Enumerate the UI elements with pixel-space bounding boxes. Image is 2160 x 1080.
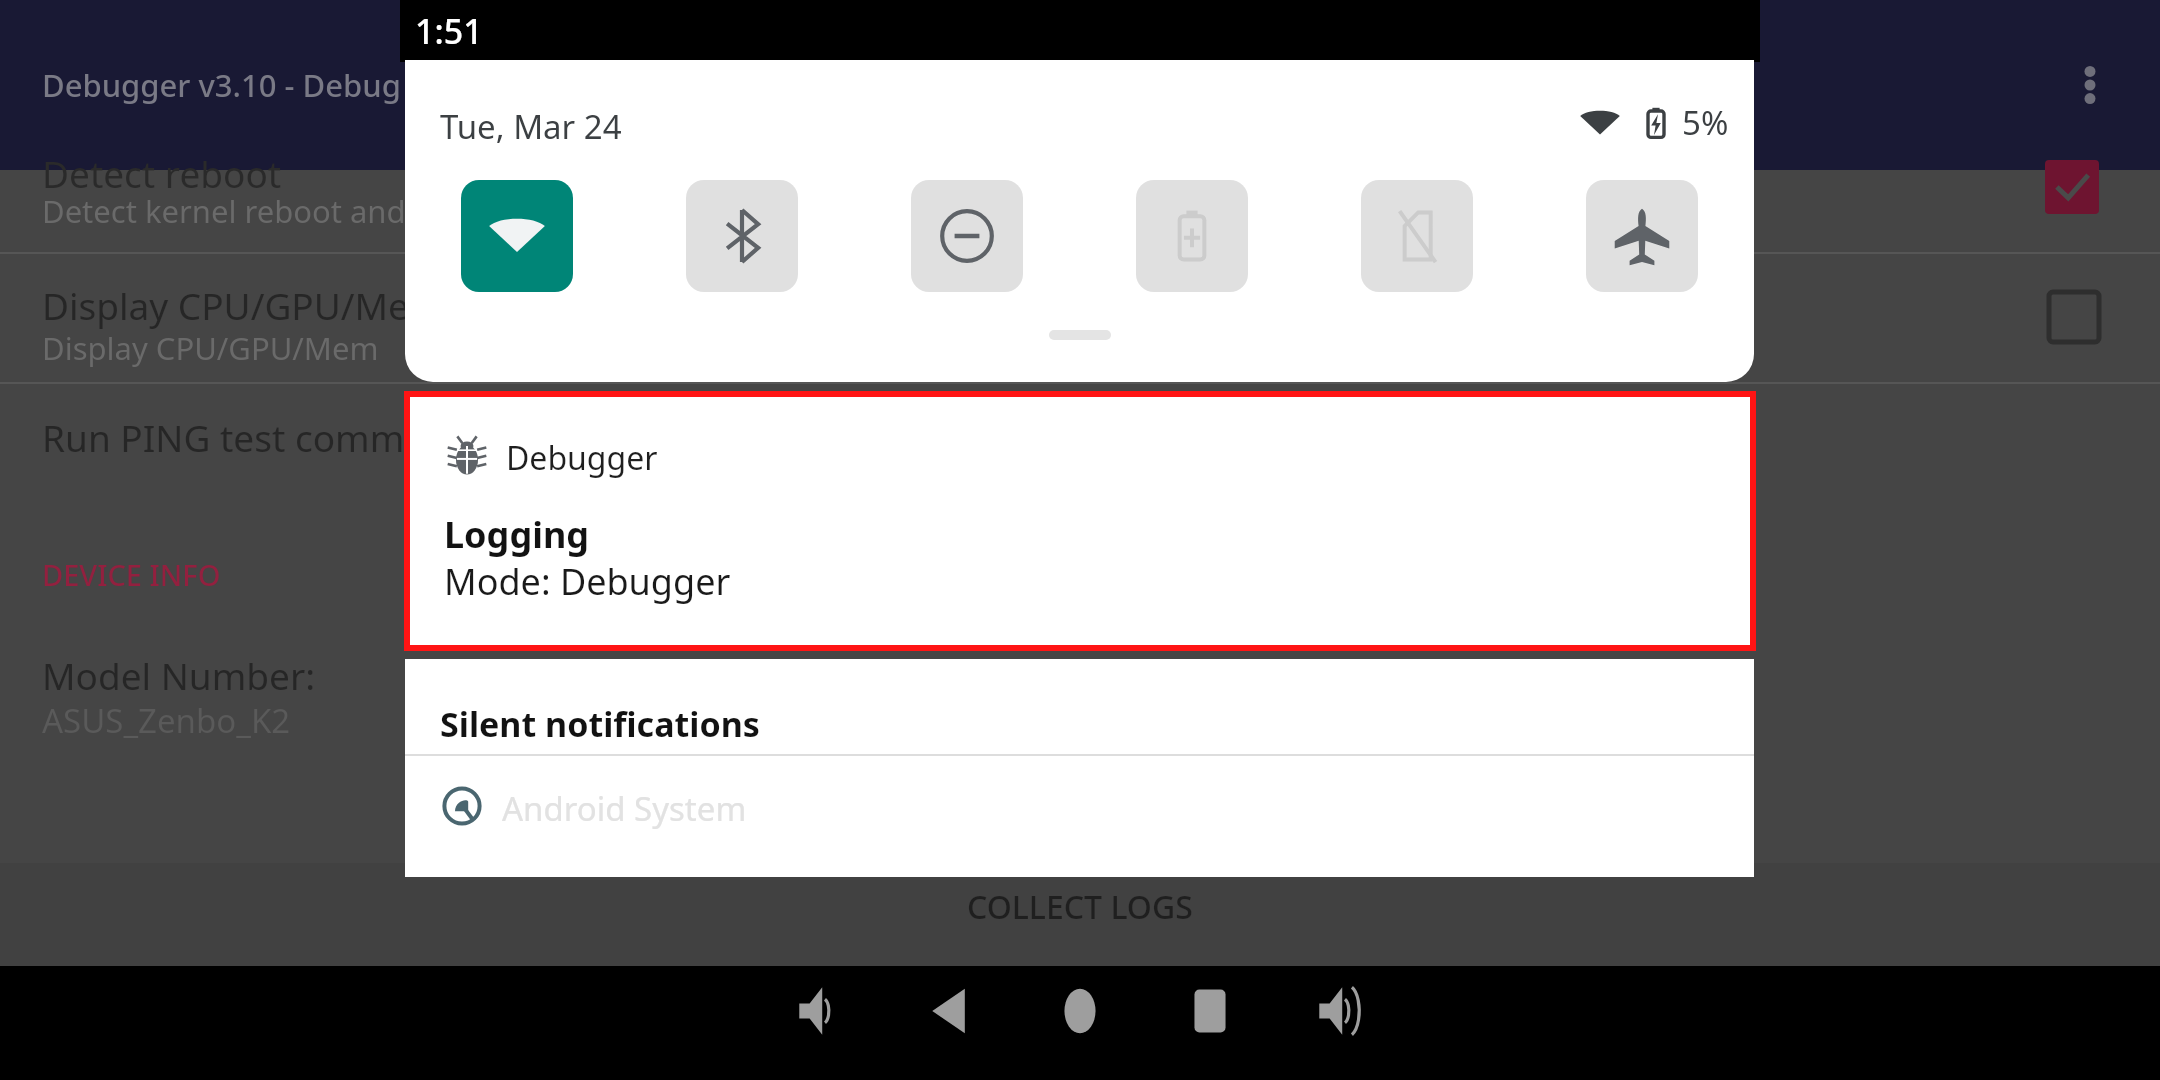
staticText: Display CPU/GPU/Mem	[42, 327, 379, 369]
button[interactable]: Back	[913, 974, 987, 1048]
button[interactable]: Android System	[405, 756, 1754, 876]
button[interactable]: Debugger	[410, 397, 1750, 645]
staticText: Run PING test comm	[42, 412, 405, 462]
button[interactable]: Bluetooth	[686, 180, 798, 292]
staticText: Debugger	[506, 436, 658, 480]
staticText: 1:51	[415, 8, 483, 54]
staticText: Silent notifications	[440, 701, 760, 747]
staticText: 5%	[1682, 100, 1729, 145]
button[interactable]: Silent notifications	[405, 659, 1754, 754]
staticText: Mode: Debugger	[444, 557, 731, 606]
staticText: Debugger v3.10 - Debug	[42, 64, 401, 106]
button[interactable]: Mobile data off	[1361, 180, 1473, 292]
button[interactable]: Volume down	[783, 974, 857, 1048]
button[interactable]: COLLECT LOGS	[0, 863, 2160, 986]
staticText: Detect kernel reboot and	[42, 190, 406, 232]
button[interactable]: Recent apps	[1173, 974, 1247, 1048]
staticText: Android System	[502, 786, 747, 831]
button[interactable]: Airplane mode	[1586, 180, 1698, 292]
staticText: ASUS_Zenbo_K2	[42, 698, 291, 743]
staticText: Logging	[444, 510, 590, 559]
staticText: DEVICE INFO	[42, 555, 221, 594]
button[interactable]: Volume up	[1303, 974, 1377, 1048]
button[interactable]: Battery saver	[1136, 180, 1248, 292]
button[interactable]: Tue, Mar 24	[440, 104, 622, 149]
staticText: Model Number:	[42, 650, 316, 700]
button[interactable]: More options	[2050, 45, 2130, 125]
button[interactable]: Home	[1043, 974, 1117, 1048]
button[interactable]: Detect reboot checkbox	[2045, 160, 2099, 214]
button[interactable]: Do not disturb	[911, 180, 1023, 292]
button[interactable]: Wi-Fi	[461, 180, 573, 292]
staticText: Detect reboot	[42, 148, 282, 198]
staticText: COLLECT LOGS	[967, 885, 1193, 929]
staticText: Display CPU/GPU/Mem	[42, 280, 444, 330]
button[interactable]: Expand	[1049, 330, 1111, 340]
button[interactable]: Display CPU checkbox	[2049, 292, 2099, 342]
